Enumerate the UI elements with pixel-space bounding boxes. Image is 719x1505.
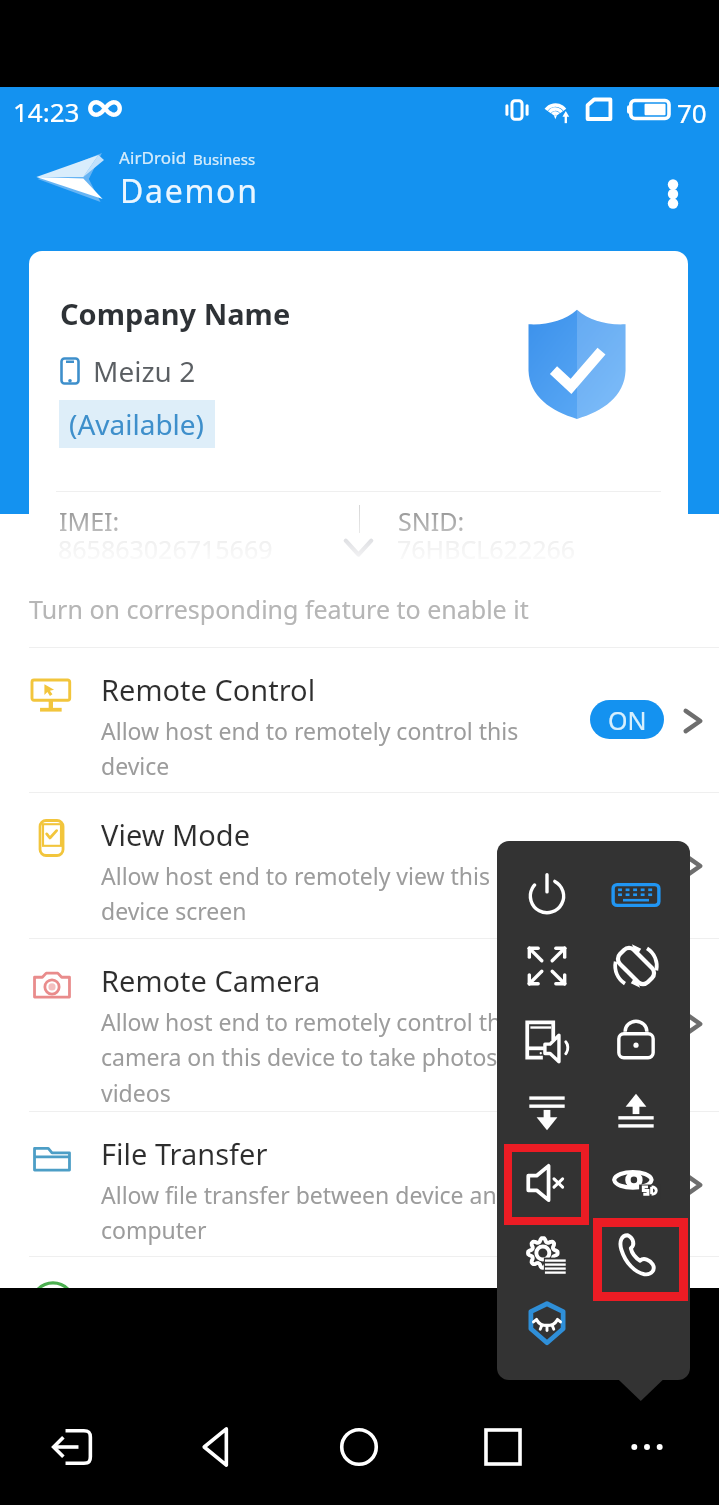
button[interactable]: Lock screen [594, 1005, 678, 1075]
staticText: (Available) [69, 405, 205, 443]
button[interactable] [0, 1256, 719, 1316]
staticText: Daemon [120, 169, 259, 213]
button[interactable]: File Transfer [0, 1111, 719, 1256]
button[interactable]: Mute [505, 1148, 589, 1218]
staticText: Remote Camera [101, 961, 321, 1000]
button[interactable]: Device audio [505, 1005, 589, 1075]
button[interactable]: Privacy mode [505, 1288, 589, 1358]
staticText: Business [193, 149, 256, 169]
button[interactable]: SD card view [594, 1148, 678, 1218]
button[interactable]: Recent apps [431, 1388, 575, 1505]
staticText: Allow host end to remotely control the c… [101, 1006, 567, 1109]
staticText: Remote Control [101, 670, 316, 709]
button[interactable]: Company Name [29, 251, 688, 565]
button[interactable]: ON [590, 700, 664, 739]
staticText: 865863026715669 [58, 532, 273, 565]
staticText: Turn on corresponding feature to enable … [29, 592, 529, 626]
staticText: Allow host end to remotely control this … [101, 715, 533, 782]
button[interactable]: Call [594, 1220, 678, 1290]
staticText: Company Name [60, 294, 291, 333]
staticText: Allow host end to remotely view this dev… [101, 860, 533, 927]
staticText: 76HBCL622266 [397, 532, 576, 565]
staticText: ON [608, 703, 647, 737]
button[interactable]: Download [505, 1077, 589, 1147]
staticText: Meizu 2 [93, 352, 196, 390]
button[interactable]: Keyboard [594, 860, 678, 930]
staticText: View Mode [101, 815, 251, 854]
button[interactable]: Fullscreen [505, 931, 589, 1001]
staticText: SNID: [398, 504, 465, 538]
button[interactable]: Remote Camera [0, 938, 719, 1111]
button[interactable]: More [575, 1388, 719, 1505]
button[interactable]: View Mode [0, 792, 719, 938]
staticText: 70 [677, 95, 707, 130]
button[interactable]: Rotate screen [594, 931, 678, 1001]
button[interactable]: Settings [505, 1220, 589, 1290]
button[interactable]: Upload [594, 1077, 678, 1147]
button[interactable]: Back [143, 1388, 287, 1505]
button[interactable]: More options [645, 166, 701, 222]
staticText: IMEI: [59, 504, 120, 538]
staticText: AirDroid [119, 146, 187, 169]
staticText: 14:23 [13, 94, 80, 129]
button[interactable]: Home [287, 1388, 431, 1505]
staticText: File Transfer [101, 1134, 268, 1173]
staticText: Allow file transfer between device and c… [101, 1179, 533, 1246]
button[interactable]: Power [505, 859, 589, 929]
button[interactable]: Exit [0, 1388, 143, 1505]
button[interactable]: Remote Control [0, 647, 719, 792]
